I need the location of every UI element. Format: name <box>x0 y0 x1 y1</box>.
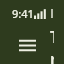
staticText: Trailhead <box>50 26 54 64</box>
button[interactable]: Menu <box>10 28 44 62</box>
staticText: 9:41 <box>12 6 34 21</box>
